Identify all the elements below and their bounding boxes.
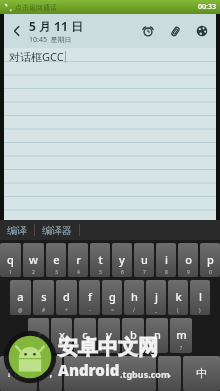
staticText: x [59,327,65,342]
button[interactable]: d [56,280,77,315]
staticText: @ [18,307,23,314]
button[interactable]: o [178,243,198,277]
button[interactable]: 编译器 [35,220,79,240]
staticText: c [82,327,88,342]
button[interactable]: f [79,280,100,315]
staticText: .tgbus.com [120,368,170,380]
staticText: b [130,327,137,342]
staticText: _ [155,307,158,314]
staticText: 5 月 11 日 [29,18,83,34]
staticText: ! [156,345,158,352]
button[interactable]: ?123 [0,356,37,391]
staticText: y [119,252,125,267]
staticText: ( [177,307,179,314]
staticText: v [106,327,112,342]
button[interactable]: e [46,243,66,277]
staticText: s [41,289,47,304]
staticText: # [42,307,46,314]
button[interactable]: k [168,280,188,315]
staticText: 编译器 [42,224,72,237]
staticText: : [108,345,110,352]
button[interactable] [64,356,156,391]
staticText: a [17,289,24,304]
staticText: Android [58,360,120,380]
staticText: e [53,252,60,267]
button[interactable]: s [33,280,54,315]
staticText: 编译 [7,224,27,237]
staticText: p [207,252,214,267]
staticText: n [154,327,161,342]
staticText: 3 [55,269,58,276]
button[interactable]: Alarm [139,22,157,40]
staticText: ' [84,345,86,352]
button[interactable]: 中 [183,356,220,391]
staticText: 5 [99,269,102,276]
button[interactable]: w [23,243,44,277]
staticText: " [60,345,63,352]
staticText: 1 [9,269,12,276]
staticText: k [175,289,182,304]
staticText: 点击返回通话 [15,3,57,12]
staticText: o [185,252,192,267]
staticText: 6 [121,269,124,276]
button[interactable]: g [102,280,122,315]
staticText: * [37,345,40,352]
button[interactable]: h [124,280,144,315]
button[interactable]: l [190,280,210,315]
staticText: f [88,289,92,304]
staticText: 9 [187,269,190,276]
staticText: , [49,365,53,380]
button[interactable]: Attach [166,22,184,40]
staticText: 7 [143,269,146,276]
staticText: 00:33 [198,2,216,12]
staticText: 安卓中文网 [58,335,158,360]
staticText: 10:45 星期日 [29,35,72,45]
staticText: z [36,327,42,342]
staticText: h [131,289,138,304]
staticText: / [133,307,135,314]
staticText: r [76,252,81,267]
staticText: m [176,327,187,342]
staticText: = [111,307,114,314]
staticText: w [29,252,38,267]
button[interactable]: v [98,318,120,353]
staticText: 2 [32,269,35,276]
button[interactable]: n [146,318,168,353]
staticText: u [141,252,148,267]
staticText: + [65,307,68,314]
button[interactable]: z [28,318,49,353]
staticText: j [155,289,158,304]
staticText: ; [132,345,134,352]
button[interactable]: b [122,318,144,353]
staticText: q [7,252,14,267]
staticText: . [168,365,171,380]
button[interactable]: m [170,318,192,353]
staticText: t [98,252,103,267]
staticText: ) [199,307,201,314]
button[interactable]: . [158,356,181,391]
button[interactable]: x [51,318,72,353]
button[interactable]: i [156,243,176,277]
staticText: - [89,307,91,314]
staticText: ?123 [7,365,31,380]
button[interactable]: t [90,243,110,277]
button[interactable]: Back [9,23,25,39]
button[interactable]: c [74,318,96,353]
button[interactable]: p [200,243,220,277]
button[interactable]: q [0,243,21,277]
button[interactable]: a [10,280,31,315]
staticText: d [63,289,70,304]
staticText: 中 [196,366,207,380]
staticText: 4 [77,269,80,276]
staticText: i [165,252,168,267]
button[interactable]: r [68,243,88,277]
button[interactable]: j [146,280,166,315]
button[interactable]: u [134,243,154,277]
staticText: 8 [165,269,168,276]
button[interactable]: 编译 [0,220,34,240]
button[interactable]: , [39,356,62,391]
staticText: g [109,289,116,304]
staticText: l [199,289,202,304]
button[interactable]: Palette [193,22,211,40]
button[interactable]: y [112,243,132,277]
